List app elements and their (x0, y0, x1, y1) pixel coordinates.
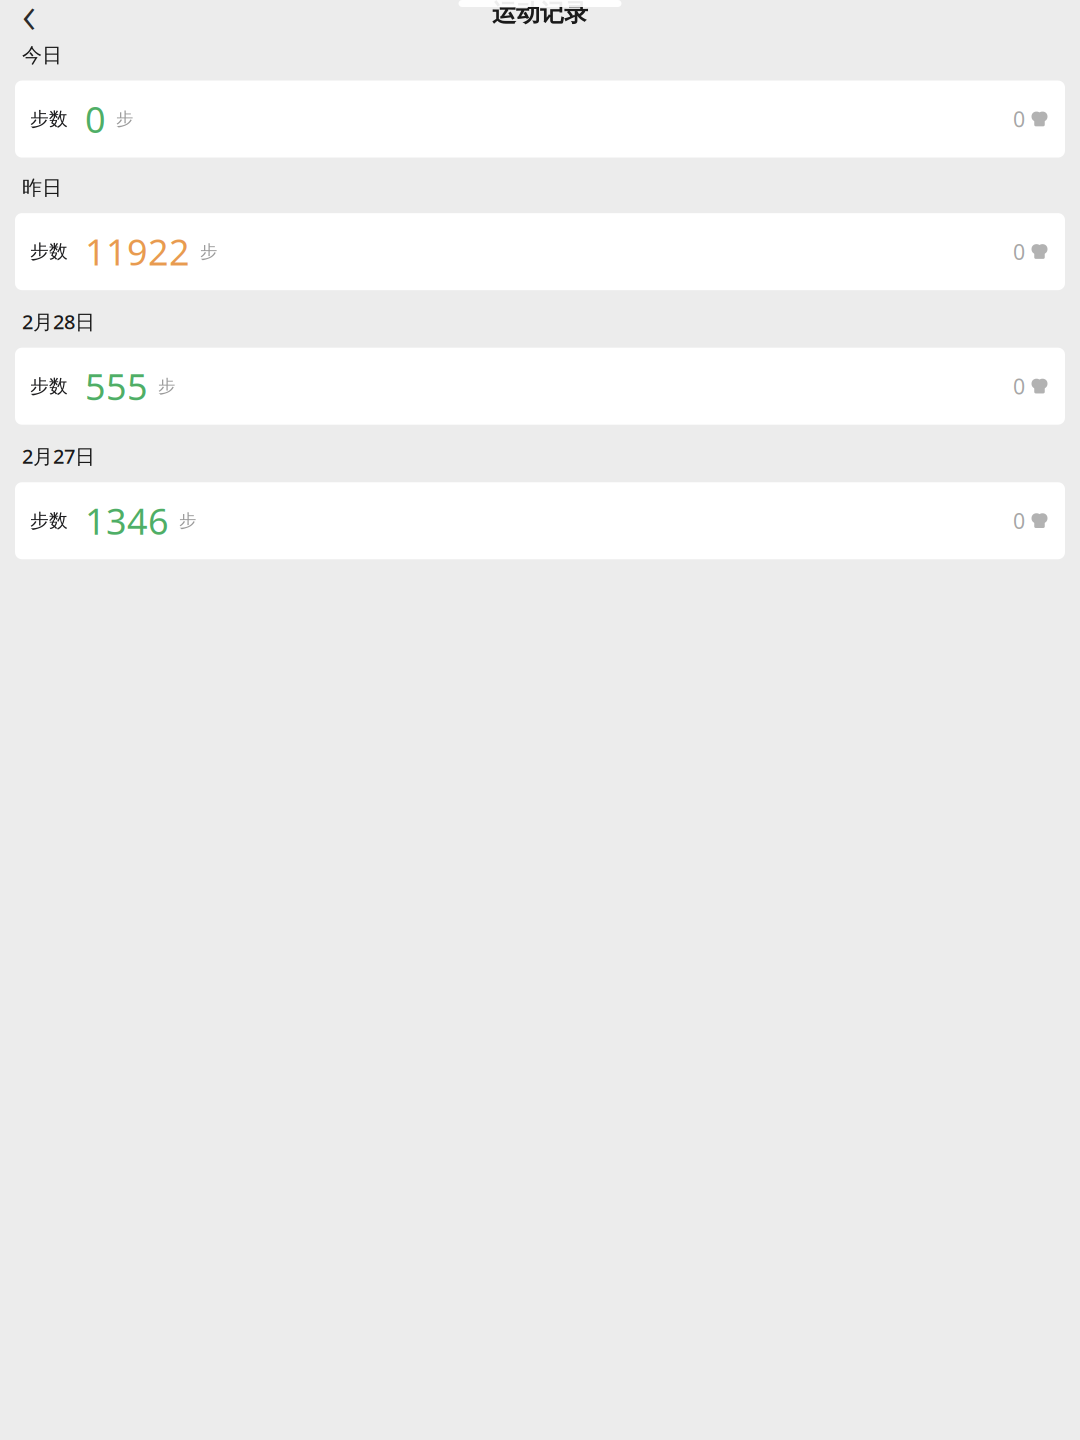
staticText: ‹ (22, 0, 36, 48)
staticText: 11922 (85, 228, 190, 275)
staticText: 0 (1013, 237, 1025, 266)
staticText: 0 (1013, 507, 1025, 535)
staticText: 1346 (85, 497, 169, 545)
button[interactable]: 步数 (15, 213, 1065, 290)
button[interactable]: Back (12, 0, 46, 26)
staticText: 昨日 (22, 176, 62, 200)
staticText: 2月27日 (22, 443, 95, 469)
staticText: 步 (116, 108, 133, 130)
staticText: 运动记录 (492, 0, 588, 28)
staticText: 步 (158, 375, 175, 397)
staticText: 0 (1013, 372, 1025, 400)
staticText: 555 (85, 362, 148, 410)
staticText: 0 (1013, 105, 1025, 133)
button[interactable]: 步数 (15, 348, 1065, 425)
button[interactable]: 步数 (15, 81, 1065, 158)
staticText: 步数 (30, 509, 68, 532)
staticText: 步数 (30, 375, 68, 398)
staticText: 步 (179, 510, 196, 531)
staticText: 步数 (30, 108, 68, 130)
staticText: 步数 (30, 240, 68, 263)
staticText: 今日 (22, 43, 62, 68)
staticText: 步 (200, 241, 217, 262)
staticText: 2月28日 (22, 308, 95, 335)
staticText: 0 (85, 95, 106, 143)
button[interactable]: 步数 (15, 482, 1065, 559)
